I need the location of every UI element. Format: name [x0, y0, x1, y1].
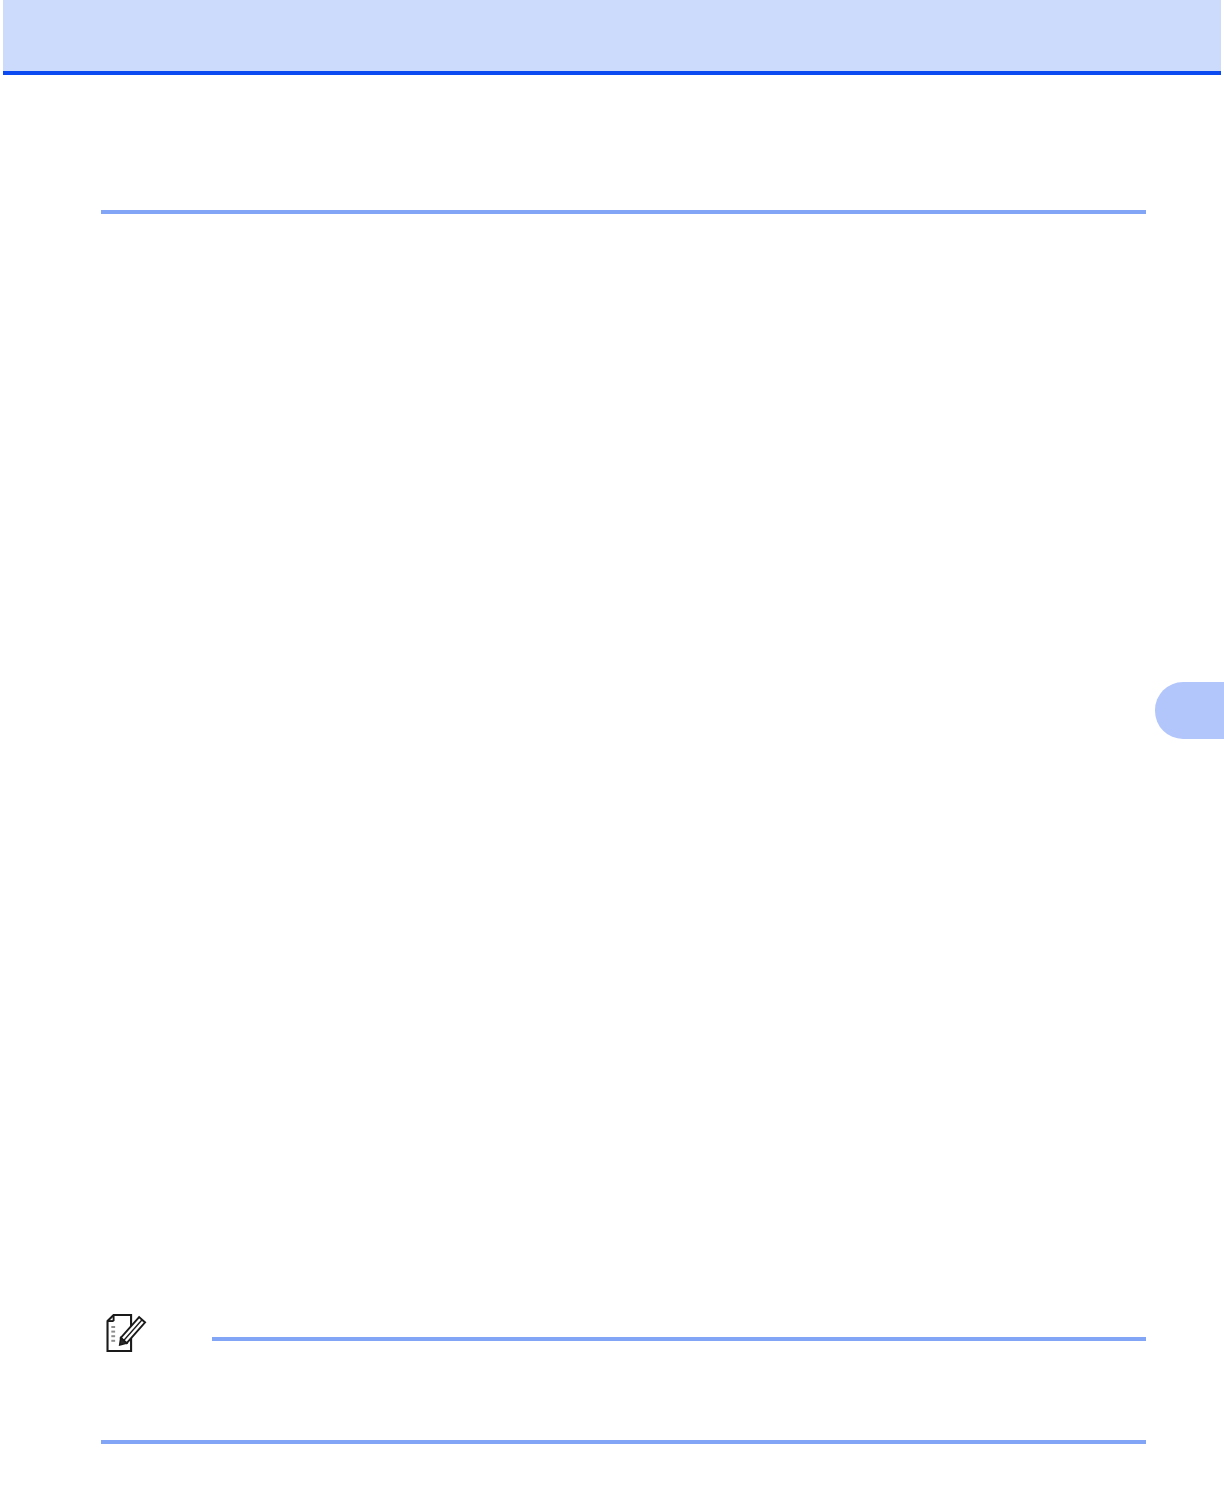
button[interactable]: Chapter tab [1155, 682, 1224, 739]
